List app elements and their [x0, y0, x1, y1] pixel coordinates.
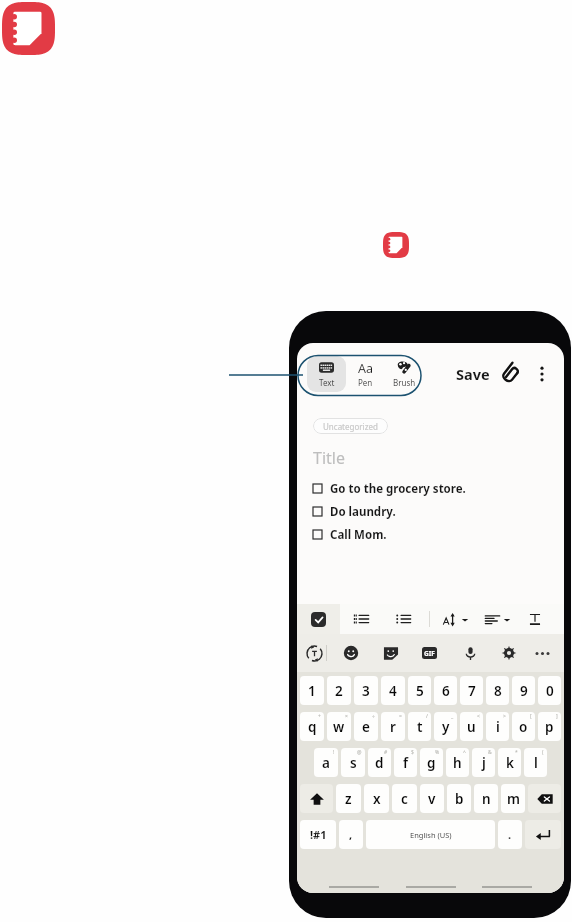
staticText: 3 — [362, 682, 370, 700]
button[interactable]: n — [474, 784, 498, 813]
button[interactable]: [ — [512, 712, 535, 741]
button[interactable]: Emoji — [337, 634, 365, 672]
staticText: h — [453, 754, 462, 772]
button[interactable]: Keyboard settings — [495, 634, 523, 672]
button[interactable]: Call Mom. — [313, 523, 548, 546]
button[interactable]: ^ — [446, 748, 469, 777]
button[interactable]: GIF — [416, 634, 443, 672]
button[interactable]: ] — [538, 712, 561, 741]
staticText: v — [428, 790, 436, 808]
button[interactable]: 4 — [381, 676, 405, 705]
staticText: l — [534, 754, 538, 772]
button[interactable]: Attach file — [499, 362, 522, 385]
staticText: Pen — [358, 377, 373, 388]
button[interactable]: Paragraph alignment — [485, 604, 519, 634]
button[interactable]: b — [447, 784, 471, 813]
button[interactable]: × — [327, 712, 351, 741]
staticText: Do laundry. — [330, 504, 396, 520]
button[interactable]: ! — [314, 748, 338, 777]
button[interactable]: Uncategorized — [313, 418, 388, 434]
button[interactable]: = — [381, 712, 405, 741]
staticText: m — [507, 790, 520, 808]
staticText: n — [482, 790, 491, 808]
button[interactable]: + — [300, 712, 324, 741]
staticText: × — [345, 713, 348, 720]
staticText: ÷ — [372, 713, 375, 720]
button[interactable]: Bulleted list — [389, 604, 417, 634]
staticText: 7 — [468, 682, 476, 700]
staticText: t — [417, 718, 423, 736]
button[interactable]: m — [501, 784, 525, 813]
button[interactable]: Voice input — [457, 634, 484, 672]
button[interactable]: 5 — [408, 676, 431, 705]
staticText: > — [503, 713, 506, 720]
button[interactable]: Shift — [300, 784, 333, 813]
button[interactable]: 0 — [538, 676, 561, 705]
staticText: p — [545, 718, 554, 736]
button[interactable]: $ — [394, 748, 417, 777]
staticText: z — [345, 790, 352, 808]
button[interactable]: Checklist — [297, 604, 340, 634]
button[interactable]: Aa — [346, 356, 385, 392]
button[interactable]: . — [498, 820, 522, 849]
button[interactable]: c — [392, 784, 417, 813]
button[interactable]: v — [420, 784, 444, 813]
button[interactable]: 7 — [460, 676, 483, 705]
staticText: = — [399, 713, 402, 720]
button[interactable]: 8 — [486, 676, 509, 705]
button[interactable]: 1 — [300, 676, 324, 705]
button[interactable]: / — [408, 712, 431, 741]
staticText: [ — [530, 713, 532, 720]
button[interactable]: % — [420, 748, 443, 777]
button[interactable]: Stickers — [377, 634, 405, 672]
button[interactable]: z — [336, 784, 361, 813]
button[interactable]: Translate — [300, 634, 329, 672]
staticText: e — [362, 718, 370, 736]
button[interactable]: English (US) — [366, 820, 495, 849]
button[interactable]: Numbered list — [347, 604, 375, 634]
button[interactable]: !#1 — [300, 820, 336, 849]
button[interactable]: x — [364, 784, 389, 813]
staticText: 9 — [520, 682, 528, 700]
button[interactable]: 9 — [512, 676, 535, 705]
button[interactable]: _ — [434, 712, 457, 741]
button[interactable]: ( — [524, 748, 547, 777]
staticText: _ — [451, 713, 454, 720]
button[interactable]: Text size — [443, 604, 477, 634]
staticText: % — [435, 749, 440, 756]
button[interactable]: Do laundry. — [313, 500, 548, 523]
staticText: k — [506, 754, 514, 772]
staticText: # — [384, 749, 388, 756]
button[interactable]: Save — [453, 359, 493, 389]
button[interactable]: > — [486, 712, 509, 741]
staticText: d — [375, 754, 384, 772]
button[interactable]: , — [339, 820, 363, 849]
staticText: ] — [556, 713, 558, 720]
staticText: < — [477, 713, 480, 720]
staticText: Go to the grocery store. — [330, 481, 466, 497]
button[interactable]: ÷ — [354, 712, 378, 741]
button[interactable]: More options — [533, 365, 551, 383]
button[interactable]: Brush — [385, 356, 424, 392]
button[interactable]: @ — [341, 748, 365, 777]
button[interactable]: & — [472, 748, 495, 777]
staticText: i — [496, 718, 500, 736]
staticText: Save — [456, 364, 490, 384]
button[interactable]: More keyboard options — [529, 634, 555, 672]
staticText: x — [373, 790, 381, 808]
button[interactable]: Backspace — [528, 784, 561, 813]
button[interactable]: 6 — [434, 676, 457, 705]
button[interactable]: 3 — [354, 676, 378, 705]
staticText: Brush — [393, 377, 416, 388]
staticText: 0 — [546, 682, 554, 700]
staticText: Title — [313, 447, 345, 469]
button[interactable]: * — [498, 748, 521, 777]
button[interactable]: Go to the grocery store. — [313, 477, 548, 500]
button[interactable]: Enter — [525, 820, 561, 849]
button[interactable]: Text style — [522, 604, 548, 634]
button[interactable]: < — [460, 712, 483, 741]
button[interactable]: 2 — [327, 676, 351, 705]
button[interactable]: # — [368, 748, 391, 777]
button[interactable]: Text — [307, 356, 346, 392]
staticText: c — [401, 790, 408, 808]
